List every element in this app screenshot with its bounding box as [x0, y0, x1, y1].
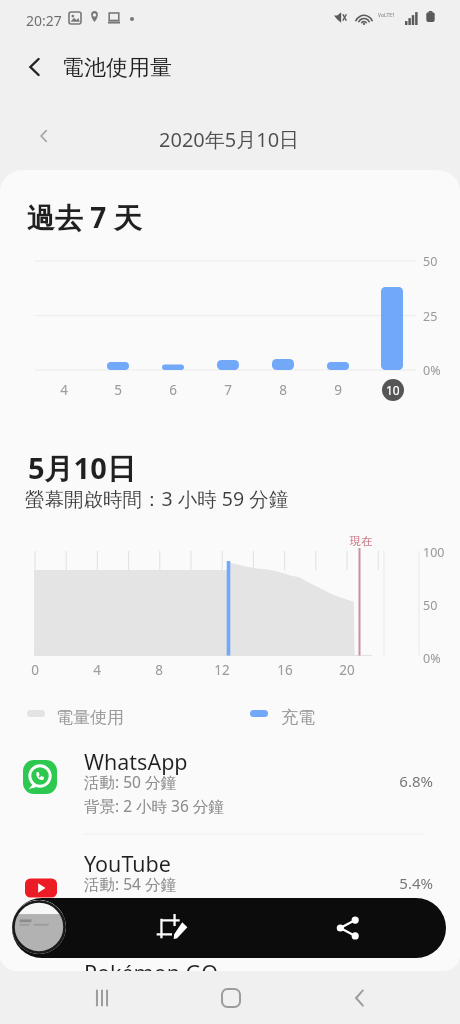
button[interactable]: Recents	[78, 972, 126, 1024]
staticText: 50	[423, 597, 438, 614]
staticText: 6.8%	[373, 771, 433, 791]
button[interactable]: Crop and edit screenshot	[149, 903, 195, 949]
staticText: 7	[213, 381, 243, 399]
staticText: YouTube	[84, 849, 171, 878]
staticText: 12	[207, 661, 237, 679]
staticText: 0	[20, 661, 50, 679]
staticText: 電池使用量	[62, 54, 172, 82]
staticText: 活動: 54 分鐘	[84, 873, 176, 894]
staticText: 16	[270, 661, 300, 679]
staticText: 9	[323, 381, 353, 399]
staticText: Pokémon GO	[84, 958, 219, 971]
staticText: 20:27	[26, 11, 62, 30]
button[interactable]: WhatsApp	[0, 740, 460, 834]
staticText: 活動: 50 分鐘	[84, 771, 176, 792]
staticText: 20	[332, 661, 362, 679]
button[interactable]: Back	[336, 972, 384, 1024]
staticText: 2020年5月10日	[159, 126, 300, 153]
staticText: 8	[268, 381, 298, 399]
button[interactable]: Back	[15, 47, 55, 87]
staticText: 電量使用	[56, 707, 124, 728]
staticText: 4	[49, 381, 79, 399]
staticText: 充電	[281, 707, 315, 728]
button[interactable]: Share	[325, 905, 371, 951]
staticText: 5月10日	[28, 448, 136, 488]
staticText: 4	[82, 661, 112, 679]
staticText: 5.4%	[373, 873, 433, 893]
button[interactable]: Screenshot preview	[12, 900, 66, 954]
staticText: 100	[423, 544, 445, 561]
staticText: 現在	[350, 534, 372, 548]
staticText: 5	[103, 381, 133, 399]
staticText: 50	[423, 253, 438, 270]
staticText: WhatsApp	[84, 747, 188, 776]
staticText: 25	[423, 308, 438, 325]
staticText: VoLTE1	[378, 12, 395, 19]
staticText: 背景: 2 小時 36 分鐘	[84, 795, 224, 816]
button[interactable]: YouTube	[0, 842, 460, 936]
button[interactable]: 10	[382, 379, 404, 401]
staticText: 6	[158, 381, 188, 399]
staticText: 螢幕開啟時間：3 小時 59 分鐘	[25, 485, 289, 512]
staticText: 10	[386, 382, 400, 398]
button[interactable]: Previous day	[28, 120, 60, 152]
button[interactable]: Home	[207, 972, 255, 1024]
staticText: 過去 7 天	[27, 198, 142, 236]
staticText: 8	[144, 661, 174, 679]
staticText: 0%	[423, 362, 441, 379]
staticText: 0%	[423, 650, 441, 667]
